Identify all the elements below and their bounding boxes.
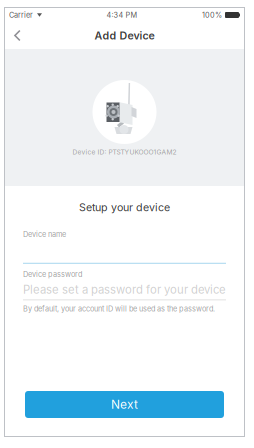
button[interactable]: Back <box>5 22 33 48</box>
staticText: Device password <box>23 270 82 279</box>
button[interactable]: Next <box>25 391 224 418</box>
staticText: 100% <box>202 11 222 19</box>
staticText: Add Device <box>94 29 154 42</box>
staticText: Please set a password for your device <box>23 283 226 296</box>
staticText: By default, your account ID will be used… <box>23 304 215 313</box>
staticText: Device name <box>23 230 66 239</box>
staticText: Next <box>111 397 138 412</box>
staticText: Device ID: PTSTYUKOOO1GAM2 <box>72 148 176 156</box>
staticText: 4:34 PM <box>106 11 137 19</box>
staticText: Setup your device <box>79 201 170 214</box>
staticText: Carrier <box>9 11 33 19</box>
